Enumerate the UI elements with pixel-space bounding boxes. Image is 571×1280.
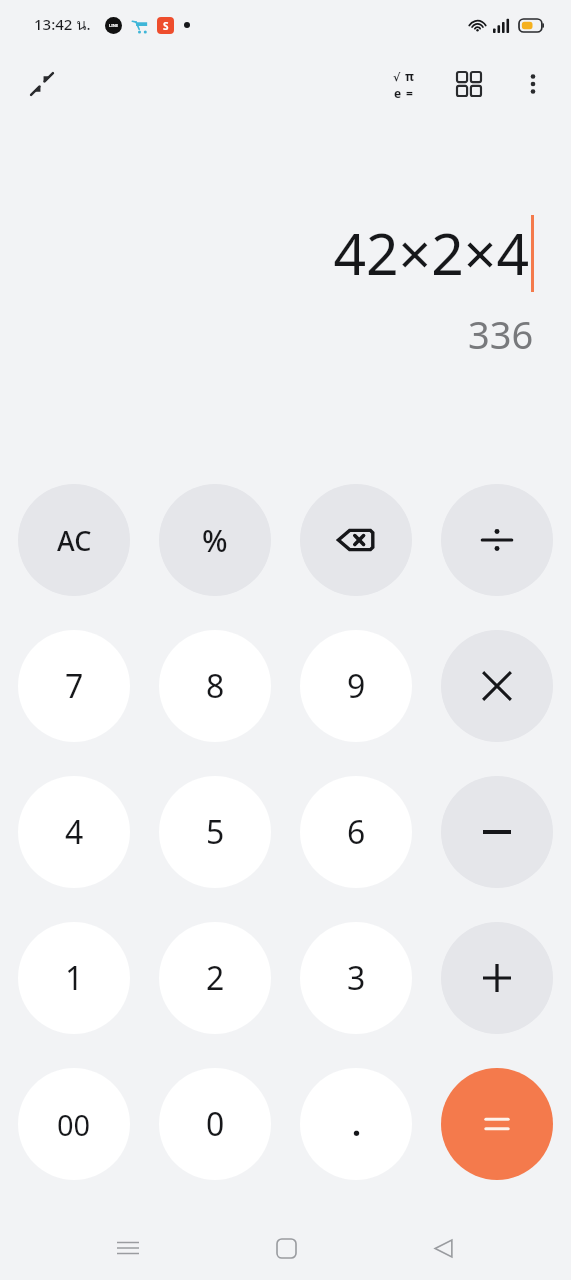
button[interactable]: Plus xyxy=(441,922,553,1034)
button[interactable]: 00 xyxy=(18,1068,130,1180)
button[interactable]: 8 xyxy=(159,630,271,742)
staticText: 1 xyxy=(65,956,84,1000)
staticText: √ xyxy=(393,71,401,84)
button[interactable]: Recents xyxy=(99,1219,157,1277)
button[interactable]: Home xyxy=(257,1219,315,1277)
button[interactable]: Back xyxy=(414,1219,472,1277)
button[interactable]: . xyxy=(300,1068,412,1180)
staticText: 4 xyxy=(65,810,84,854)
staticText: 2 xyxy=(206,956,225,1000)
button[interactable]: 7 xyxy=(18,630,130,742)
button[interactable]: Minus xyxy=(441,776,553,888)
button[interactable]: 1 xyxy=(18,922,130,1034)
button[interactable]: Scientific mode xyxy=(375,56,431,112)
staticText: 9 xyxy=(347,664,366,708)
button[interactable]: % xyxy=(159,484,271,596)
staticText: LINE xyxy=(109,23,119,28)
button[interactable]: 3 xyxy=(300,922,412,1034)
button[interactable]: More options xyxy=(505,56,561,112)
staticText: S xyxy=(163,19,169,33)
staticText: 42×2×4 xyxy=(333,214,529,292)
staticText: 8 xyxy=(206,664,225,708)
staticText: . xyxy=(352,1102,361,1146)
staticText: 336 xyxy=(468,308,534,360)
button[interactable]: AC xyxy=(18,484,130,596)
staticText: % xyxy=(202,520,228,561)
button[interactable]: 4 xyxy=(18,776,130,888)
button[interactable]: Divide xyxy=(441,484,553,596)
staticText: π xyxy=(405,68,414,84)
staticText: 6 xyxy=(347,810,366,854)
button[interactable]: 9 xyxy=(300,630,412,742)
button[interactable]: Collapse xyxy=(14,56,70,112)
staticText: 0 xyxy=(206,1102,225,1146)
button[interactable]: 5 xyxy=(159,776,271,888)
staticText: = xyxy=(406,85,413,101)
staticText: e xyxy=(394,85,402,101)
button[interactable]: Multiply xyxy=(441,630,553,742)
button[interactable]: Backspace xyxy=(300,484,412,596)
button[interactable]: 2 xyxy=(159,922,271,1034)
button[interactable]: Converters xyxy=(441,56,497,112)
staticText: AC xyxy=(57,522,92,559)
staticText: 7 xyxy=(65,664,84,708)
button[interactable]: 0 xyxy=(159,1068,271,1180)
button[interactable]: 6 xyxy=(300,776,412,888)
staticText: 13:42 น. xyxy=(34,13,91,37)
staticText: 00 xyxy=(57,1105,91,1144)
staticText: 3 xyxy=(347,956,366,1000)
button[interactable]: Equals xyxy=(441,1068,553,1180)
staticText: 5 xyxy=(206,810,225,854)
